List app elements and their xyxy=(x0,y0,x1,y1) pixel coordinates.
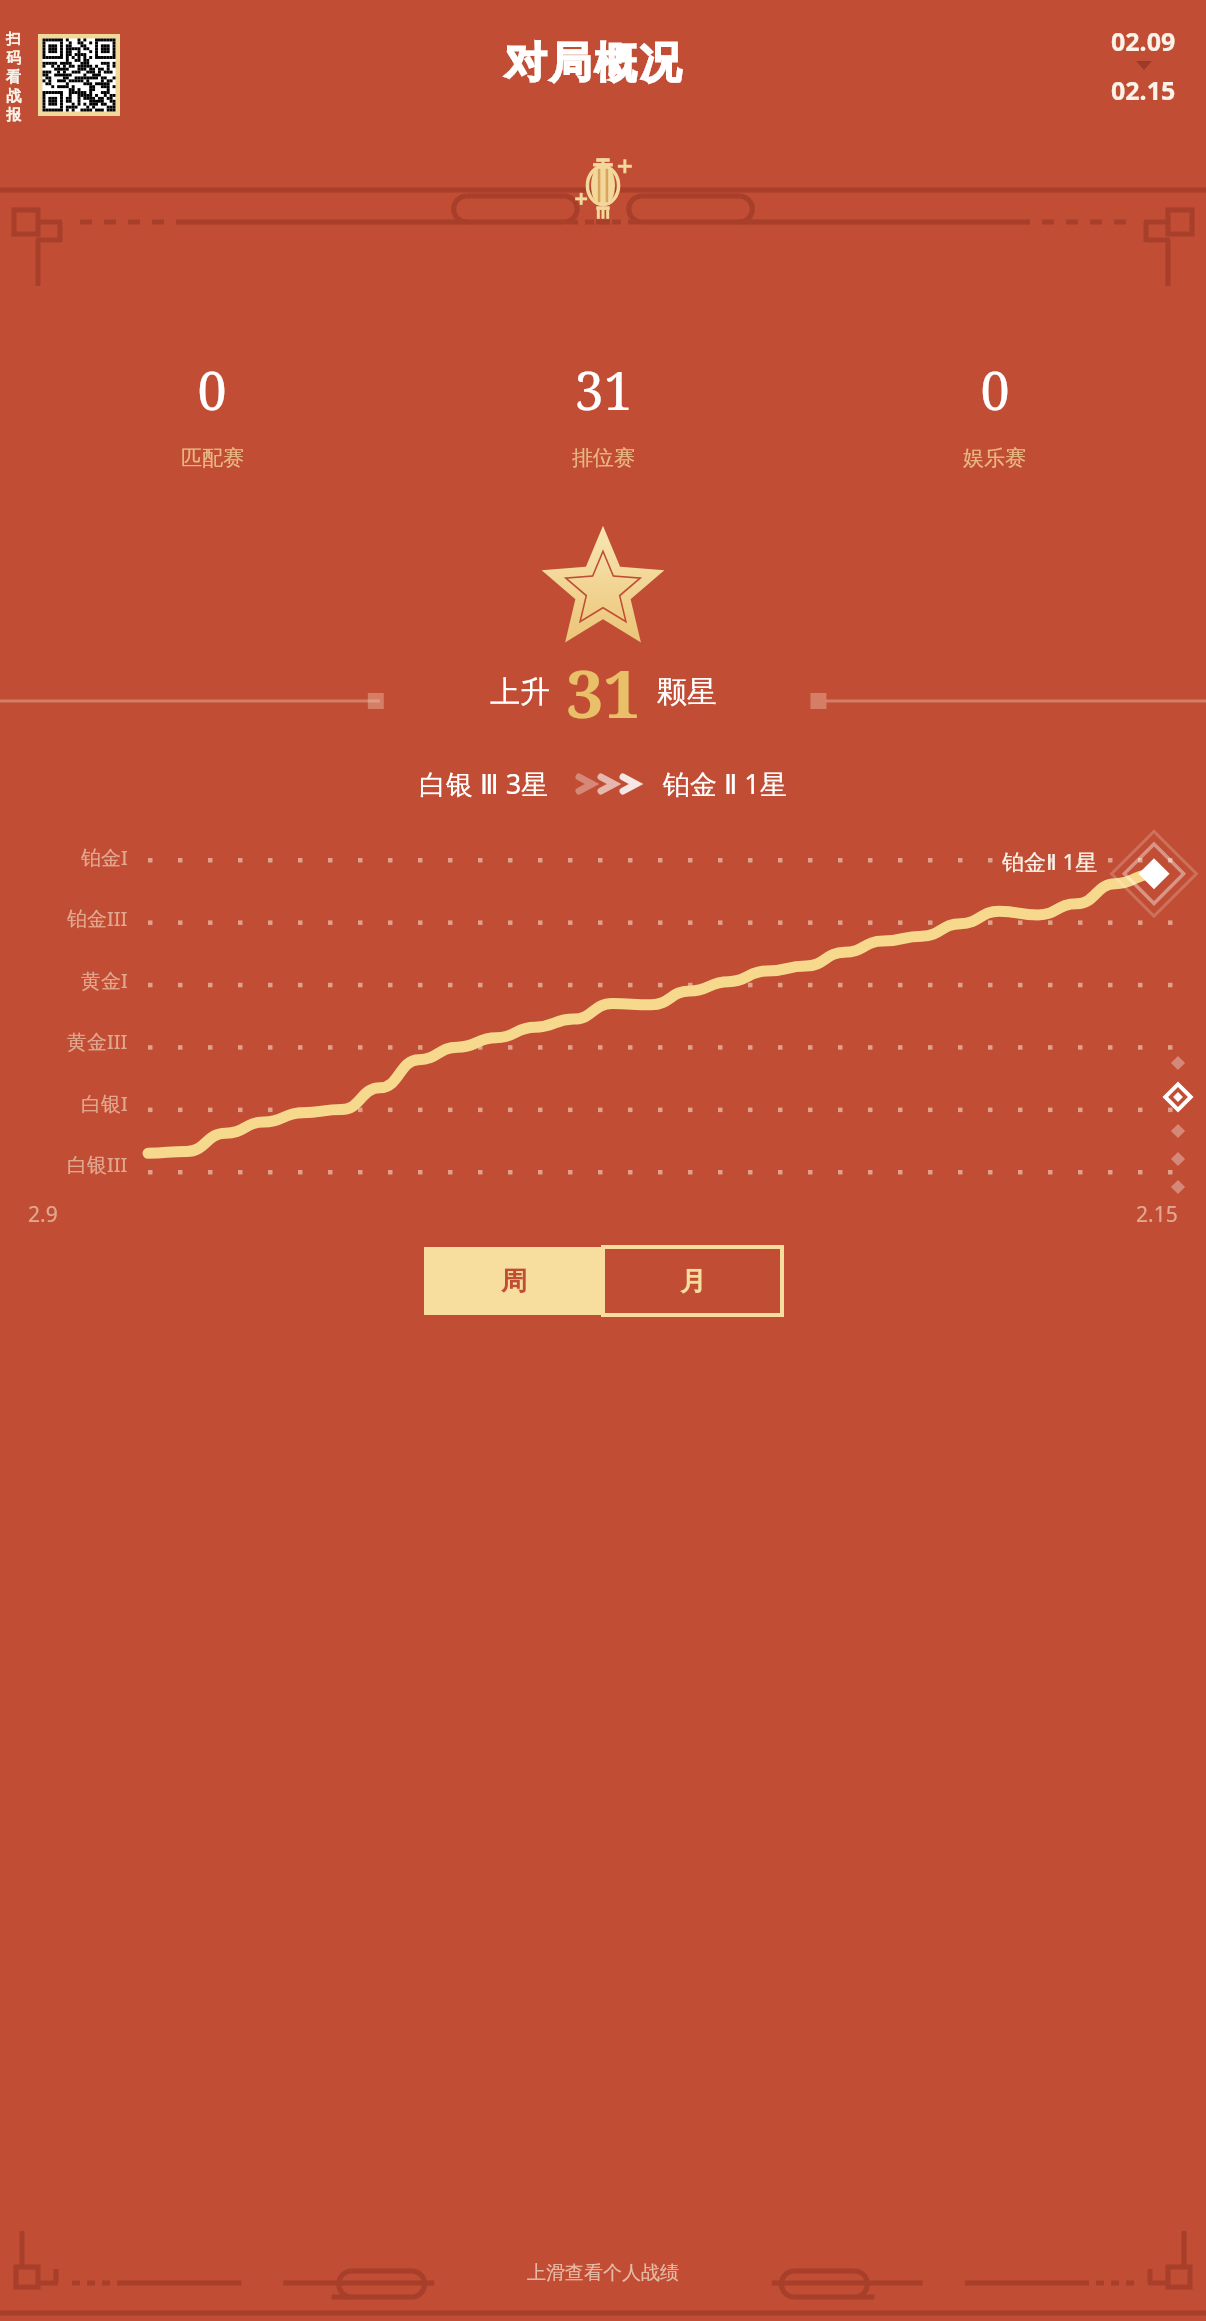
staticText: 02.09 xyxy=(1111,24,1176,58)
staticText: 看 xyxy=(6,68,21,87)
staticText: 排位赛 xyxy=(572,445,635,471)
staticText: 扫 xyxy=(6,30,21,49)
button[interactable]: Page indicator xyxy=(1170,1056,1196,1194)
staticText: 铂金III xyxy=(67,905,128,932)
staticText: 颗星 xyxy=(657,673,717,711)
staticText: 白银 Ⅲ 3星 xyxy=(419,765,549,802)
staticText: 上升 xyxy=(490,673,550,711)
button[interactable]: 上滑查看个人战绩 xyxy=(527,2261,679,2285)
button[interactable]: 0 xyxy=(799,354,1190,471)
staticText: 周 xyxy=(501,1265,527,1298)
button[interactable]: 31 xyxy=(408,354,799,471)
staticText: 白银III xyxy=(67,1151,128,1178)
staticText: 报 xyxy=(6,106,21,125)
staticText: 2.9 xyxy=(28,1200,58,1229)
button[interactable]: 周 xyxy=(424,1247,603,1315)
staticText: 0 xyxy=(980,354,1010,425)
staticText: 娱乐赛 xyxy=(963,445,1026,471)
button[interactable]: 月 xyxy=(603,1247,782,1315)
staticText: 对局概况 xyxy=(503,37,683,90)
staticText: 02.15 xyxy=(1111,73,1176,107)
staticText: 战 xyxy=(6,87,21,106)
staticText: 铂金 Ⅱ 1星 xyxy=(663,765,787,802)
button[interactable]: QR code xyxy=(38,34,120,116)
staticText: 码 xyxy=(6,49,21,68)
staticText: 黄金I xyxy=(81,967,128,994)
staticText: 匹配赛 xyxy=(181,445,244,471)
staticText: 31 xyxy=(566,647,641,737)
staticText: 黄金III xyxy=(67,1028,128,1055)
staticText: 2.15 xyxy=(1136,1200,1178,1229)
staticText: 铂金I xyxy=(81,844,128,871)
staticText: 0 xyxy=(197,354,227,425)
button[interactable]: 0 xyxy=(16,354,408,471)
staticText: 铂金Ⅱ 1星 xyxy=(1002,846,1098,876)
staticText: 月 xyxy=(680,1265,706,1298)
staticText: 31 xyxy=(574,354,633,425)
staticText: 白银I xyxy=(81,1090,128,1117)
